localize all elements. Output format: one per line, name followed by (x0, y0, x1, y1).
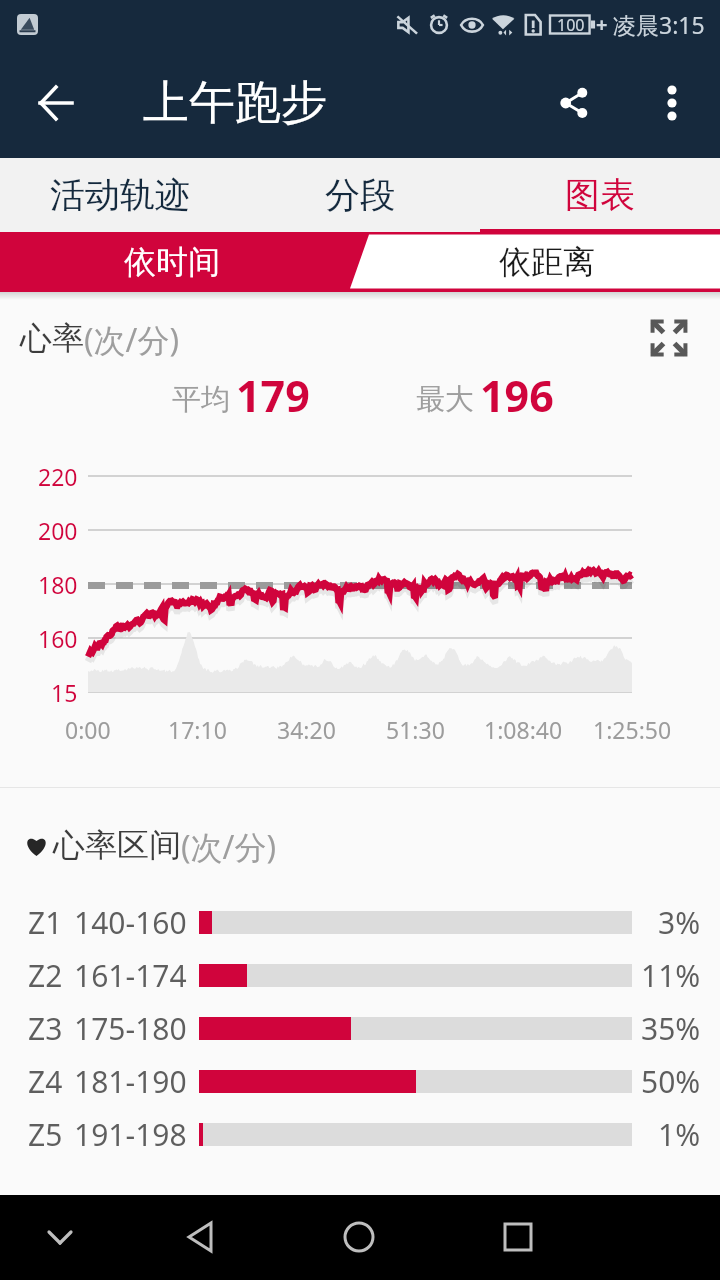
button[interactable]: Z2 (0, 949, 720, 1002)
staticText: 17:10 (168, 714, 227, 745)
button[interactable]: Hide keyboard (32, 1209, 88, 1265)
button[interactable]: Fullscreen (650, 319, 688, 357)
button[interactable]: 依距离 (360, 232, 720, 292)
staticText: 35% (641, 1008, 701, 1049)
staticText: Z5 (28, 1114, 63, 1155)
staticText: 51:30 (386, 714, 445, 745)
staticText: 3% (658, 902, 701, 943)
button[interactable]: 活动轨迹 (0, 158, 240, 232)
staticText: 191-198 (74, 1114, 187, 1155)
button[interactable]: Z4 (0, 1055, 720, 1108)
staticText: 最大 (416, 381, 474, 418)
button[interactable]: Share (546, 75, 602, 131)
staticText: 1:25:50 (593, 714, 672, 745)
staticText: 181-190 (74, 1061, 187, 1102)
button[interactable]: 依时间 (0, 232, 360, 292)
staticText: 180 (38, 569, 78, 600)
staticText: 心率区间 (53, 825, 181, 865)
staticText: (次/分) (181, 825, 277, 869)
staticText: Z1 (28, 902, 63, 943)
staticText: 34:20 (277, 714, 336, 745)
staticText: Z4 (28, 1061, 63, 1102)
staticText: 15 (51, 677, 78, 708)
staticText: 100 (557, 14, 585, 36)
staticText: 上午跑步 (143, 74, 327, 132)
staticText: 161-174 (74, 955, 187, 996)
button[interactable]: Z3 (0, 1002, 720, 1055)
button[interactable]: Recents (490, 1209, 546, 1265)
button[interactable]: 分段 (240, 158, 480, 232)
staticText: 140-160 (74, 902, 187, 943)
staticText: 179 (236, 366, 310, 425)
staticText: 196 (480, 366, 554, 425)
staticText: 依时间 (124, 242, 220, 282)
button[interactable]: Z5 (0, 1108, 720, 1161)
staticText: 50% (641, 1061, 701, 1102)
staticText: 220 (38, 461, 78, 492)
button[interactable]: Z1 (0, 896, 720, 949)
staticText: 1:08:40 (484, 714, 563, 745)
button[interactable]: Home (331, 1209, 387, 1265)
staticText: 图表 (565, 173, 635, 217)
staticText: 平均 (172, 381, 230, 418)
button[interactable]: More options (644, 75, 700, 131)
staticText: Z2 (28, 955, 63, 996)
staticText: 0:00 (65, 714, 111, 745)
staticText: 1% (658, 1114, 701, 1155)
staticText: 175-180 (74, 1008, 187, 1049)
staticText: 分段 (325, 173, 395, 217)
staticText: 200 (38, 515, 78, 546)
staticText: + (596, 11, 608, 38)
staticText: 依距离 (499, 242, 595, 282)
staticText: (次/分) (84, 318, 180, 362)
button[interactable]: 图表 (480, 158, 720, 232)
staticText: 凌晨3:15 (613, 9, 705, 40)
staticText: 活动轨迹 (50, 173, 190, 217)
staticText: Z3 (28, 1008, 63, 1049)
button[interactable]: Back (174, 1209, 230, 1265)
staticText: 160 (38, 623, 78, 654)
button[interactable]: Back (25, 72, 87, 134)
staticText: 心率 (20, 318, 84, 358)
staticText: 11% (641, 955, 701, 996)
